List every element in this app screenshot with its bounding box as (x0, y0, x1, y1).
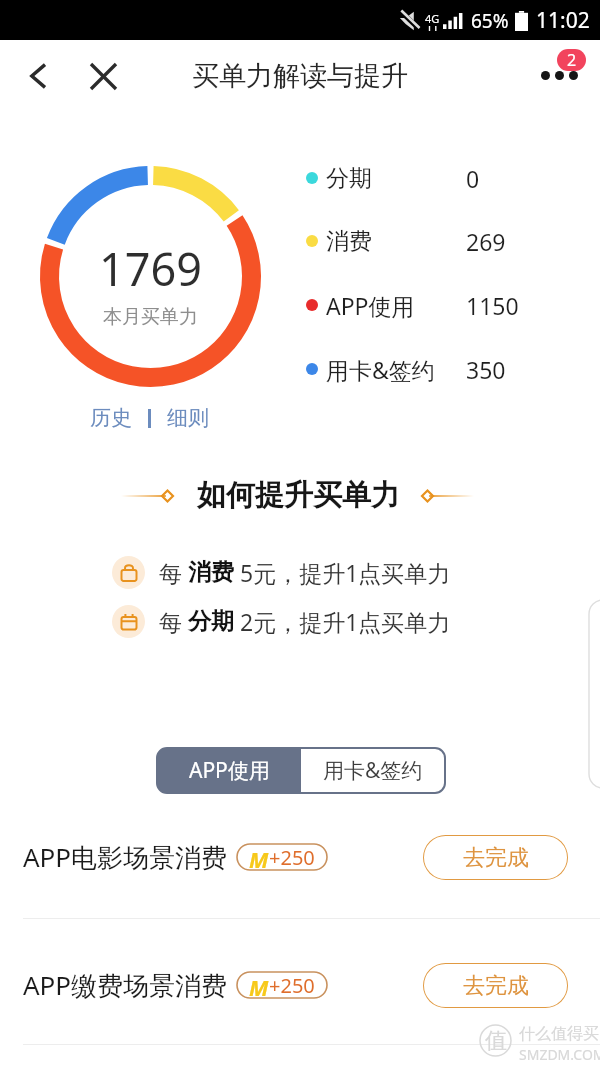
staticText: 1150 (466, 290, 519, 321)
button[interactable]: 去完成 (423, 835, 568, 880)
staticText: 去完成 (463, 972, 529, 1000)
staticText: 如何提升买单力 (197, 477, 400, 514)
staticText: 2元，提升1点买单力 (234, 606, 451, 637)
staticText: 买单力解读与提升 (192, 59, 408, 93)
staticText: 350 (466, 354, 506, 385)
button[interactable]: 细则 (167, 405, 209, 431)
staticText: 什么值得买 (519, 1024, 599, 1044)
staticText: 细则 (167, 405, 209, 431)
staticText: 去完成 (463, 844, 529, 872)
button[interactable]: Close (80, 53, 126, 99)
staticText: +250 (269, 972, 315, 998)
staticText: 5元，提升1点买单力 (234, 557, 451, 588)
staticText: 历史 (90, 405, 132, 431)
staticText: 11:02 (536, 6, 590, 35)
staticText: 269 (466, 226, 506, 257)
button[interactable]: 用卡&签约 (301, 748, 445, 793)
staticText: 2 (567, 49, 577, 71)
staticText: APP电影场景消费 (23, 839, 228, 875)
staticText: 每 (159, 557, 188, 588)
staticText: 用卡&签约 (323, 756, 423, 785)
staticText: 消费 (326, 227, 372, 256)
button[interactable]: More options (534, 44, 590, 100)
button[interactable]: APP电影场景消费 (0, 825, 600, 889)
staticText: 每 (159, 606, 188, 637)
staticText: 消费 (188, 558, 234, 587)
staticText: 4G (425, 11, 440, 26)
staticText: SMZDM.COM (519, 1045, 600, 1064)
staticText: 分期 (188, 607, 234, 636)
staticText: 1769 (99, 238, 202, 299)
button[interactable]: APP缴费场景消费 (0, 953, 600, 1017)
staticText: 值 (485, 1027, 507, 1055)
button[interactable]: 去完成 (423, 963, 568, 1008)
button[interactable]: 历史 (90, 405, 132, 431)
staticText: APP缴费场景消费 (23, 967, 228, 1003)
staticText: 本月买单力 (103, 305, 198, 329)
staticText: APP使用 (326, 290, 415, 321)
staticText: 65% (471, 8, 509, 34)
staticText: 用卡&签约 (326, 354, 435, 385)
button[interactable]: APP使用 (157, 748, 301, 793)
staticText: +250 (269, 844, 315, 870)
staticText: APP使用 (189, 756, 270, 785)
staticText: M (249, 844, 269, 870)
staticText: M (249, 972, 269, 998)
staticText: 分期 (326, 164, 372, 193)
staticText: 0 (466, 163, 480, 194)
button[interactable]: Back (16, 53, 62, 99)
